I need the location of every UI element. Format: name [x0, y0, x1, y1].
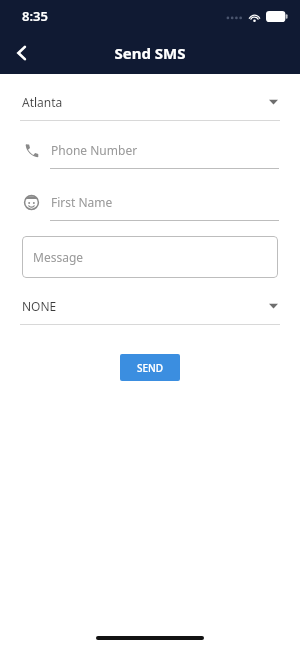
button[interactable]: Message	[22, 236, 278, 278]
button[interactable]: Back	[0, 32, 44, 74]
button[interactable]: Atlanta	[0, 92, 300, 121]
button[interactable]: NONE	[0, 296, 300, 325]
staticText: Message	[33, 249, 84, 265]
staticText: Send SMS	[114, 43, 186, 63]
staticText: Phone Number	[51, 142, 138, 158]
button[interactable]: Phone Number	[0, 140, 300, 169]
staticText: SEND	[137, 361, 164, 375]
button[interactable]: First Name	[0, 192, 300, 221]
button[interactable]: SEND	[120, 354, 180, 381]
staticText: Atlanta	[22, 94, 63, 110]
staticText: First Name	[51, 194, 113, 210]
staticText: 8:35	[22, 7, 48, 25]
staticText: NONE	[22, 298, 57, 314]
